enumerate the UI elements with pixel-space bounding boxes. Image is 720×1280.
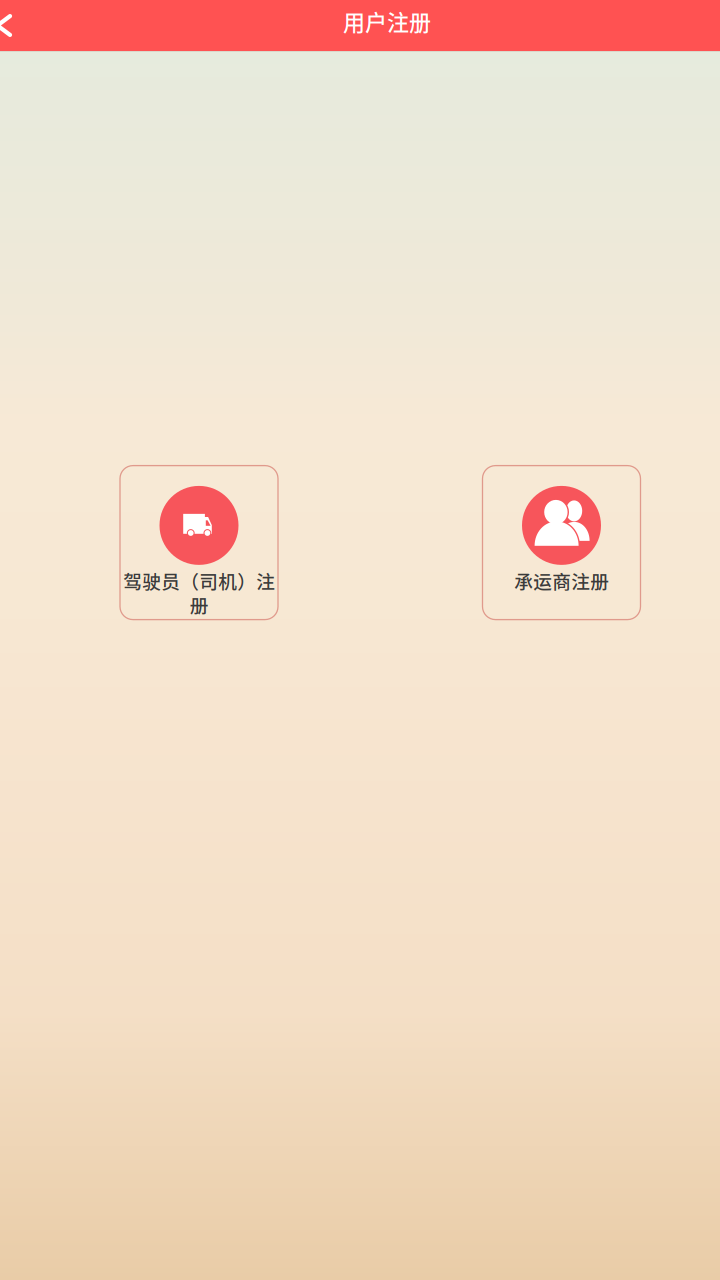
button[interactable]: 驾驶员（司机）注册 bbox=[120, 466, 278, 620]
button[interactable]: Back bbox=[0, 0, 36, 51]
staticText: 驾驶员（司机）注册 bbox=[123, 567, 275, 618]
staticText: 承运商注册 bbox=[514, 567, 609, 594]
staticText: 用户注册 bbox=[343, 5, 431, 37]
button[interactable]: 承运商注册 bbox=[482, 466, 640, 620]
